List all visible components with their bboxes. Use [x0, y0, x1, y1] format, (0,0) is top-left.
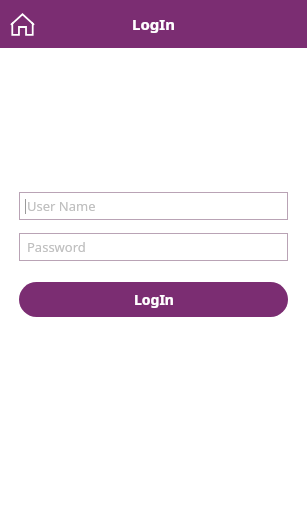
button[interactable]: Home [7, 9, 37, 39]
staticText: LogIn [134, 290, 174, 309]
button[interactable]: LogIn [19, 282, 288, 317]
button[interactable]: Password [19, 233, 288, 261]
button[interactable]: User Name [19, 192, 288, 220]
staticText: Password [27, 238, 86, 256]
staticText: User Name [27, 197, 96, 215]
staticText: LogIn [0, 14, 307, 34]
